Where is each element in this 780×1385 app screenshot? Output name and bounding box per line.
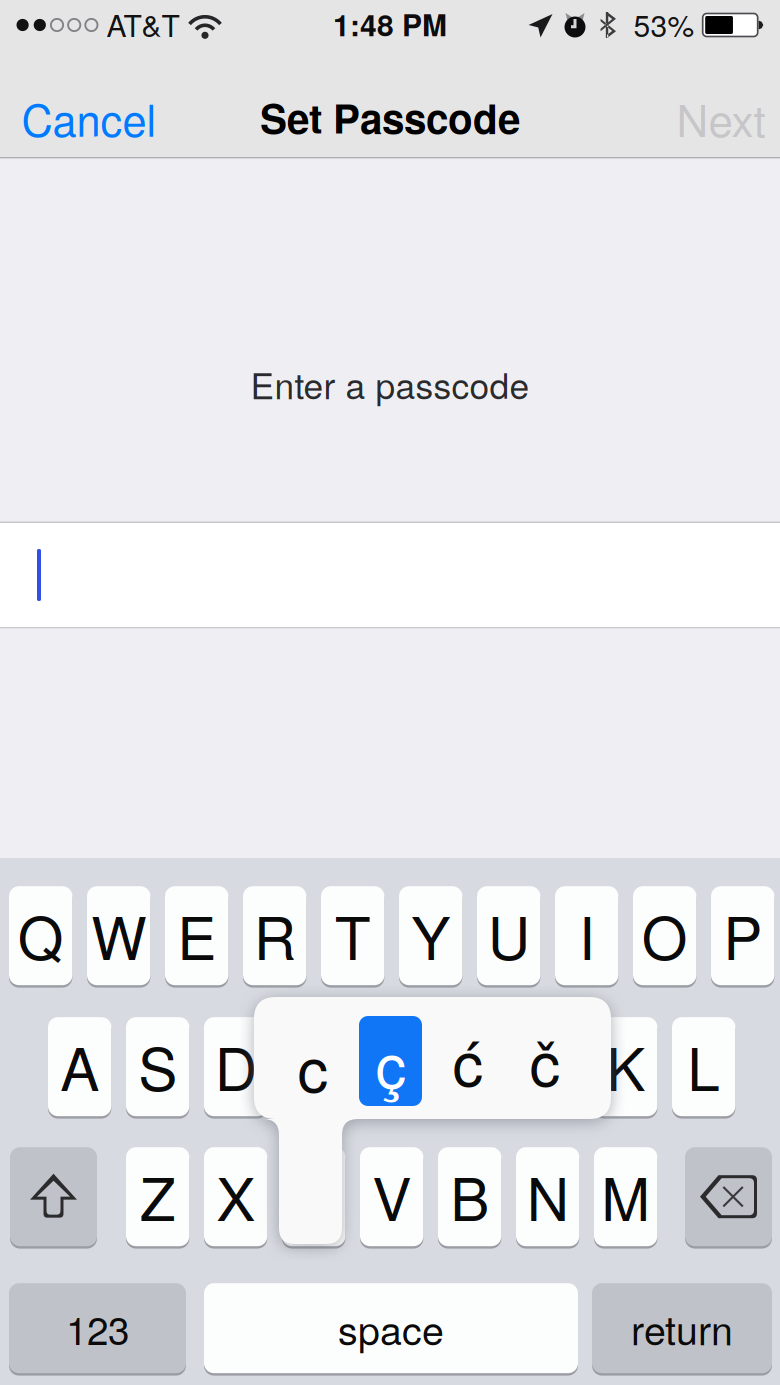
button[interactable]: Delete [685,1146,772,1247]
button[interactable]: I [555,885,618,986]
staticText: W [91,893,146,977]
button[interactable]: S [126,1016,189,1117]
staticText: Set Passcode [260,88,520,146]
button[interactable]: Z [126,1146,189,1247]
button[interactable]: Q [9,885,72,986]
staticText: Q [18,893,64,977]
staticText: Cancel [21,87,156,149]
staticText: AT&T [106,2,179,45]
button[interactable]: J [516,1016,579,1117]
staticText: H [449,1024,491,1108]
staticText: R [254,893,296,977]
button[interactable]: U [477,885,540,986]
button[interactable]: T [321,885,384,986]
button[interactable]: X [204,1146,267,1247]
button[interactable]: Shift [10,1146,97,1247]
button[interactable]: L [672,1016,735,1117]
button[interactable]: V [360,1146,423,1247]
button[interactable]: G [360,1016,423,1117]
button[interactable]: Y [399,885,462,986]
button[interactable]: C [282,1146,345,1247]
button[interactable]: H [438,1016,501,1117]
button[interactable]: N [516,1146,579,1247]
staticText: c [297,1022,328,1110]
staticText: X [216,1154,255,1238]
staticText: U [488,893,530,977]
staticText: return [631,1300,733,1356]
staticText: M [601,1154,650,1238]
button[interactable]: W [87,885,150,986]
button[interactable]: O [633,885,696,986]
button[interactable]: M [594,1146,657,1247]
staticText: F [296,1024,332,1108]
staticText: Z [140,1154,176,1238]
button[interactable]: space [204,1282,578,1374]
button[interactable]: return [592,1282,772,1374]
staticText: K [606,1024,645,1108]
staticText: space [338,1300,444,1356]
button[interactable]: R [243,885,306,986]
button[interactable]: 123 [9,1282,186,1374]
staticText: Y [411,893,450,977]
staticText: N [527,1154,569,1238]
staticText: 53% [633,2,694,45]
button[interactable]: Cancel [9,79,169,157]
staticText: S [138,1024,177,1108]
button[interactable]: P [711,885,774,986]
staticText: L [687,1024,720,1108]
staticText: J [533,1024,562,1108]
button[interactable]: F [282,1016,345,1117]
staticText: ç [375,1018,406,1106]
staticText: A [60,1024,99,1108]
staticText: P [723,893,762,977]
staticText: I [579,893,595,977]
staticText: O [642,893,688,977]
staticText: Next [676,86,765,149]
button[interactable]: A [48,1016,111,1117]
staticText: G [369,1024,415,1108]
staticText: E [177,893,216,977]
staticText: 1:48 PM [333,2,447,45]
staticText: T [335,893,371,977]
staticText: Enter a passcode [250,359,529,409]
staticText: B [450,1154,489,1238]
button[interactable]: E [165,885,228,986]
button[interactable]: D [204,1016,267,1117]
staticText: 123 [66,1300,129,1356]
staticText: D [215,1024,257,1108]
button[interactable]: Next [651,79,780,157]
staticText: ć [452,1016,483,1104]
staticText: V [372,1154,411,1238]
button[interactable]: K [594,1016,657,1117]
staticText: č [529,1016,560,1104]
button[interactable]: B [438,1146,501,1247]
